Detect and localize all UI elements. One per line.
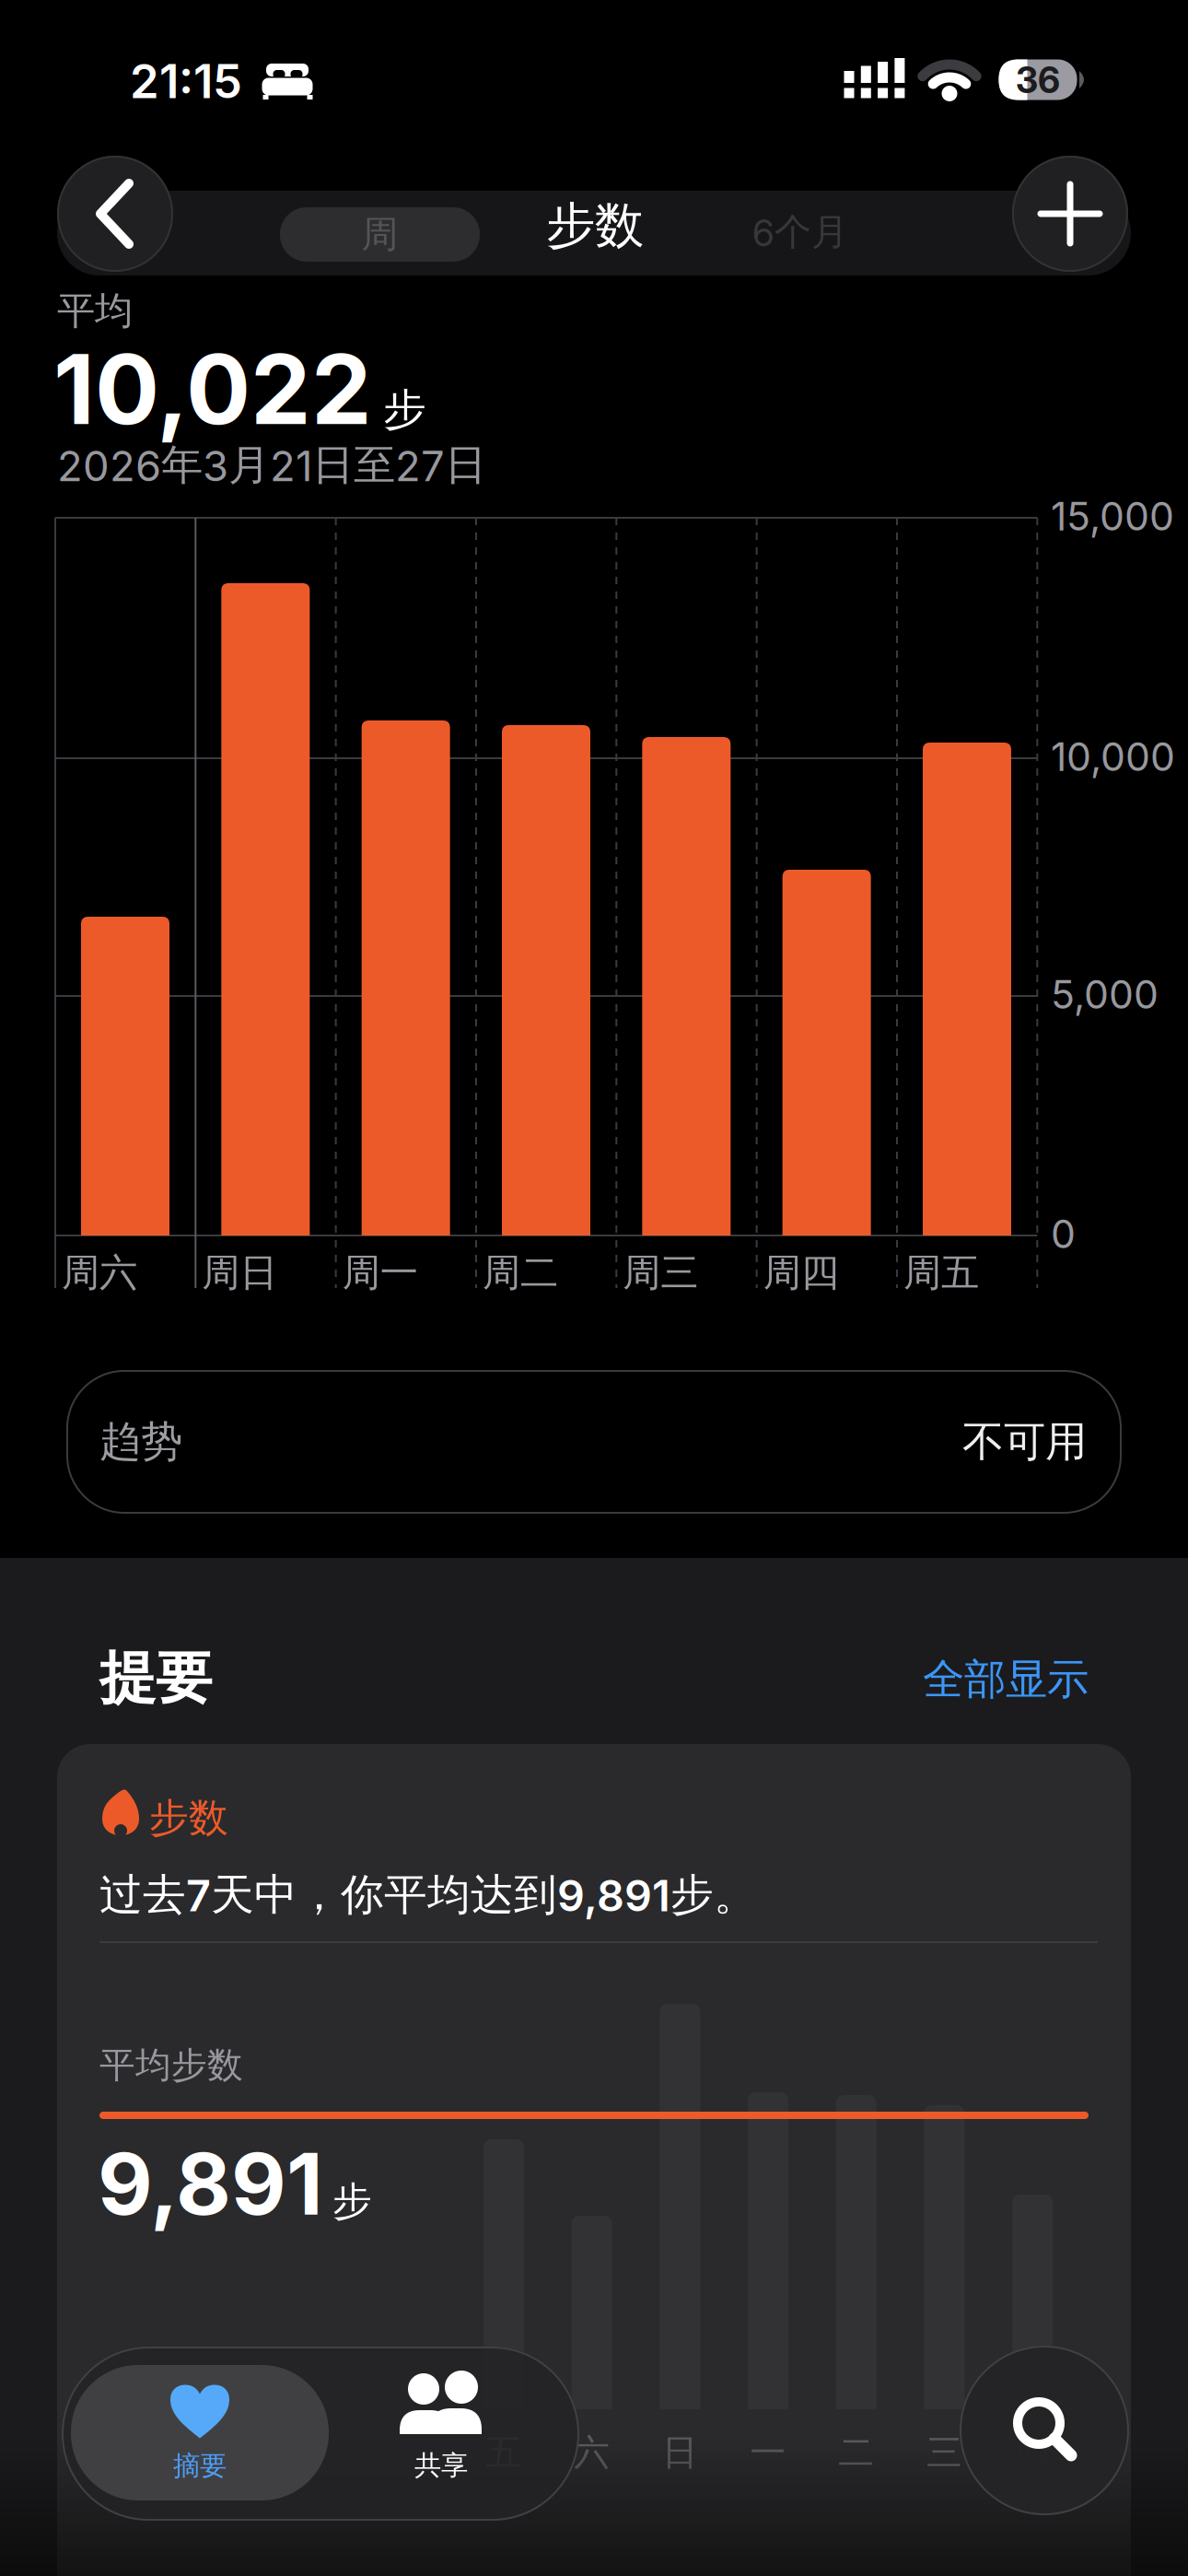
button[interactable]: 全部显示 [849,1647,1089,1712]
staticText: 10,000 [1051,733,1175,780]
staticText: 15,000 [1051,493,1174,539]
button[interactable]: 添加 [1012,156,1128,272]
button[interactable]: 共享 [329,2347,577,2521]
staticText: 周五 [903,1249,979,1296]
button[interactable]: 搜索 [960,2346,1129,2515]
staticText: 摘要 [173,2449,227,2482]
staticText: 9,891 [98,2134,323,2234]
button[interactable]: 返回 [57,156,173,272]
button[interactable]: 6个月 [717,205,883,260]
button[interactable]: 周 [280,207,480,262]
staticText: 36 [1016,59,1060,101]
staticText: 步数 [149,1794,228,1842]
staticText: 5,000 [1051,971,1159,1017]
staticText: 全部显示 [923,1654,1089,1705]
staticText: 周日 [202,1249,277,1296]
staticText: 日 [662,2431,698,2474]
staticText: 周二 [483,1249,558,1296]
staticText: 6个月 [752,210,848,255]
button[interactable]: 摘要 [71,2365,329,2500]
staticText: 0 [1051,1211,1076,1257]
staticText: 四 [1015,2431,1051,2474]
staticText: 步 [383,383,426,436]
staticText: 周一 [342,1249,418,1296]
staticText: 平均 [57,287,133,334]
staticText: 二 [838,2431,874,2474]
staticText: 过去7天中，你平均达到9,891步。 [99,1868,757,1921]
staticText: 共享 [414,2449,468,2482]
staticText: 2026年3月21日至27日 [57,439,486,491]
staticText: 周六 [62,1249,137,1296]
button[interactable]: 趋势 [66,1370,1122,1514]
staticText: 趋势 [99,1416,182,1468]
staticText: 10,022 [53,333,372,446]
staticText: 三 [926,2431,962,2474]
staticText: 六 [574,2431,610,2474]
staticText: 周四 [763,1249,839,1296]
staticText: 一 [750,2431,786,2474]
staticText: 平均步数 [99,2043,243,2087]
staticText: 步 [332,2177,372,2226]
staticText: 不可用 [962,1416,1087,1468]
staticText: 周 [361,212,398,257]
staticText: 周三 [623,1249,698,1296]
button[interactable]: 步数 [57,1744,1131,2576]
staticText: 21:15 [130,54,242,109]
staticText: 提要 [99,1644,212,1713]
staticText: 步数 [546,196,644,256]
